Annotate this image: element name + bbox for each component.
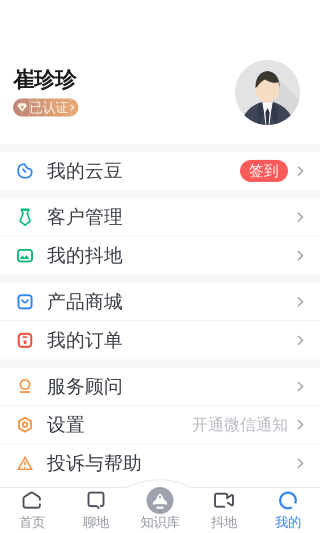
button[interactable]: 已认证 bbox=[13, 98, 78, 116]
staticText: 投诉与帮助 bbox=[47, 452, 142, 475]
staticText: 知识库 bbox=[140, 514, 179, 530]
button[interactable]: 投诉与帮助 bbox=[0, 444, 320, 482]
staticText: 客户管理 bbox=[47, 206, 123, 228]
staticText: 服务顾问 bbox=[47, 375, 123, 398]
staticText: 我的云豆 bbox=[47, 159, 123, 182]
staticText: 设置 bbox=[47, 413, 85, 436]
staticText: 我的订单 bbox=[47, 329, 123, 352]
staticText: 开通微信通知 bbox=[192, 415, 288, 435]
staticText: 聊地 bbox=[83, 514, 109, 530]
button[interactable]: 抖地 bbox=[192, 491, 256, 530]
staticText: 抖地 bbox=[211, 514, 237, 530]
button[interactable]: 聊地 bbox=[64, 491, 128, 530]
button[interactable]: 服务顾问 bbox=[0, 368, 320, 406]
staticText: 崔珍珍 bbox=[13, 67, 76, 93]
button[interactable]: 我的抖地 bbox=[0, 237, 320, 275]
staticText: 我的抖地 bbox=[47, 244, 123, 267]
button[interactable]: 首页 bbox=[0, 491, 64, 530]
staticText: 我的 bbox=[275, 514, 301, 530]
button[interactable]: 产品商城 bbox=[0, 283, 320, 321]
staticText: 产品商城 bbox=[47, 290, 123, 313]
button[interactable]: 我的 bbox=[256, 491, 320, 530]
button[interactable]: 我的订单 bbox=[0, 321, 320, 359]
staticText: 首页 bbox=[19, 514, 45, 530]
staticText: 已认证 bbox=[29, 99, 68, 116]
staticText: 签到 bbox=[249, 162, 279, 180]
button[interactable]: 客户管理 bbox=[0, 198, 320, 237]
button[interactable]: 设置 bbox=[0, 406, 320, 444]
button[interactable]: 知识库 bbox=[128, 491, 192, 530]
button[interactable]: 我的云豆 bbox=[0, 152, 320, 190]
